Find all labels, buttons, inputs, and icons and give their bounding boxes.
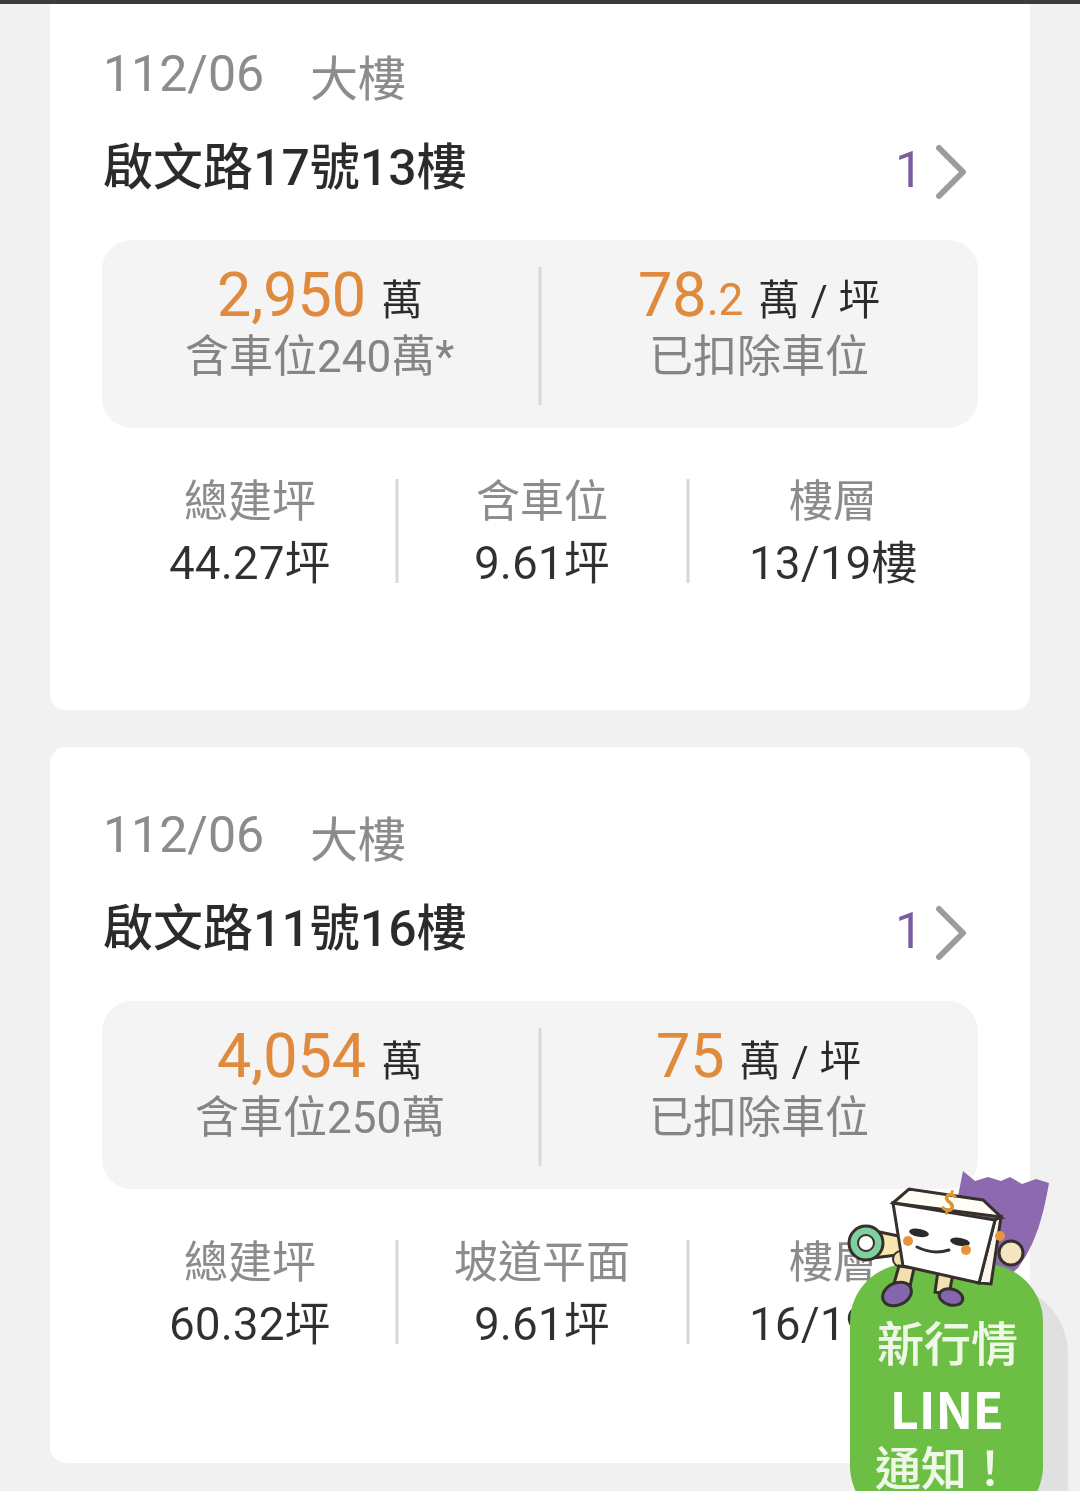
staticText: 總建坪	[184, 1227, 316, 1291]
staticText: 2,950	[217, 259, 367, 330]
staticText: 新行情	[877, 1306, 1018, 1374]
staticText: 萬	[381, 266, 424, 327]
staticText: 坡道平面	[454, 1227, 630, 1291]
staticText: 樓層	[789, 1227, 877, 1291]
staticText: 4,054	[217, 1020, 367, 1091]
staticText: 含車位240萬*	[185, 321, 455, 385]
staticText: 1	[895, 141, 924, 200]
staticText: 啟文路17號13樓	[103, 127, 467, 199]
staticText: 已扣除車位	[649, 321, 869, 385]
staticText: 60.32坪	[169, 1287, 331, 1354]
staticText: 1	[895, 902, 924, 961]
button[interactable]	[50, 4, 1030, 710]
staticText: 75	[656, 1020, 725, 1091]
staticText: 44.27坪	[169, 526, 331, 593]
staticText: 112/06	[103, 806, 265, 865]
staticText: 含車位250萬	[195, 1082, 446, 1146]
staticText: 13/19樓	[749, 526, 918, 593]
button[interactable]	[850, 1264, 1043, 1491]
staticText: 通知！	[875, 1432, 1013, 1491]
staticText: 已扣除車位	[649, 1082, 869, 1146]
staticText: 112/06	[103, 45, 265, 104]
staticText: 大樓	[310, 40, 407, 110]
staticText: LINE	[890, 1371, 1004, 1443]
staticText: 大樓	[310, 801, 407, 871]
staticText: $	[937, 1181, 963, 1221]
staticText: 78	[638, 259, 707, 330]
staticText: 樓層	[789, 466, 877, 530]
staticText: 萬 / 坪	[758, 266, 881, 327]
staticText: 萬 / 坪	[739, 1027, 862, 1088]
staticText: 啟文路11號16樓	[103, 888, 467, 960]
staticText: 16/19樓	[749, 1287, 918, 1354]
staticText: 9.61坪	[474, 1287, 610, 1354]
staticText: 萬	[381, 1027, 424, 1088]
staticText: 含車位	[476, 466, 608, 530]
staticText: 9.61坪	[474, 526, 610, 593]
button[interactable]	[50, 747, 1030, 1463]
staticText: .2	[707, 274, 744, 326]
staticText: 總建坪	[184, 466, 316, 530]
